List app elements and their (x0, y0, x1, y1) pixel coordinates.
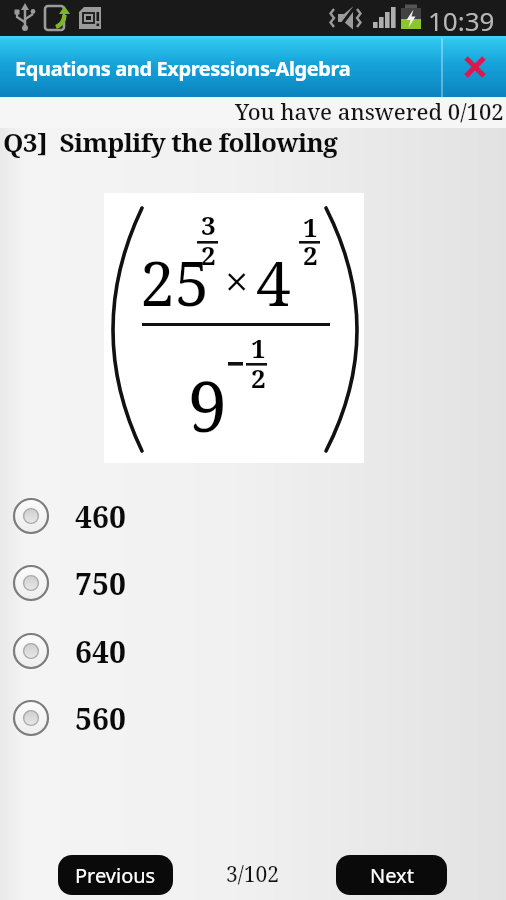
staticText: Next (370, 862, 414, 889)
staticText: 2 (251, 360, 266, 395)
button[interactable]: 640 (0, 631, 230, 671)
staticText: 9 (188, 357, 228, 452)
staticText: You have answered 0/102 (235, 96, 504, 126)
staticText: 3 (201, 207, 216, 242)
staticText: 560 (75, 698, 126, 738)
staticText: 10:39 (428, 3, 495, 38)
staticText: Previous (75, 862, 156, 889)
staticText: 640 (75, 631, 126, 671)
staticText: 1 (251, 330, 266, 365)
staticText: 25 (140, 240, 210, 324)
staticText: Q3] Simplify the following (3, 124, 338, 159)
button[interactable]: Next (336, 855, 447, 895)
button[interactable]: 750 (0, 563, 230, 603)
button[interactable]: Previous (58, 855, 173, 895)
staticText: 2 (303, 237, 318, 272)
staticText: 1 (303, 209, 318, 244)
staticText: Equations and Expressions-Algebra (15, 55, 351, 82)
button[interactable] (443, 36, 506, 97)
staticText: 460 (75, 496, 126, 536)
staticText: 2 (201, 237, 216, 272)
staticText: 3/102 (226, 860, 280, 889)
staticText: 750 (75, 563, 126, 603)
button[interactable]: 460 (0, 496, 230, 536)
button[interactable]: 560 (0, 698, 230, 738)
staticText: × (225, 252, 249, 309)
staticText: 4 (256, 240, 291, 324)
